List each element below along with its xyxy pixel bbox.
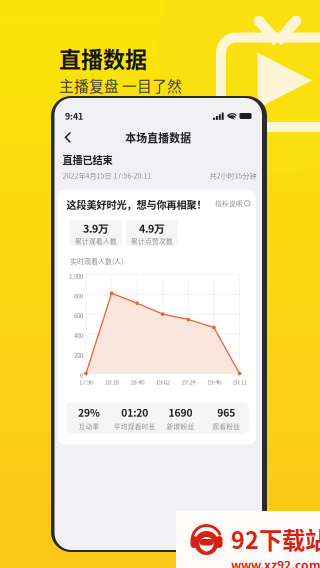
staticText: 400 [74,331,83,340]
staticText: 1690 [168,405,192,420]
staticText: 直播数据 [59,42,147,74]
staticText: 18:18 [105,377,119,386]
staticText: 17:56 [79,377,93,386]
staticText: 965 [217,405,235,420]
staticText: 200 [74,351,83,360]
staticText: 9:41 [65,110,83,122]
staticText: 1,000 [69,271,83,281]
button[interactable]: Back [59,126,76,148]
staticText: www.xz92.com [231,556,320,568]
staticText: 0 [80,370,83,380]
staticText: 01:20 [121,405,148,420]
staticText: 累计点赞次数 [131,236,173,246]
staticText: 指标说明 [215,198,243,208]
staticText: 29% [78,405,100,420]
staticText: 这段美好时光，想与你再相聚！ [66,197,206,212]
staticText: 2022年4月15日 17:56-20:11 [62,170,151,181]
staticText: 主播复盘 一目了然 [59,75,182,96]
staticText: 800 [74,291,83,300]
staticText: 4.9万 [139,220,165,236]
staticText: 互动率 [78,422,99,431]
staticText: 新增粉丝 [166,422,194,431]
staticText: 92下载站 [231,522,320,556]
staticText: 累计观看人数 [75,236,117,246]
staticText: 实时观看人数(人) [70,256,123,266]
staticText: 本场直播数据 [125,130,191,145]
staticText: 20:11 [232,377,246,386]
staticText: 观看粉丝 [212,422,240,431]
staticText: 18:40 [130,377,144,386]
staticText: 600 [74,311,83,320]
staticText: 直播已结束 [62,152,112,167]
staticText: 19:46 [207,377,221,386]
staticText: 共2小时15分钟 [209,170,256,181]
staticText: 19:24 [181,377,195,386]
staticText: 3.9万 [83,220,109,236]
staticText: 平均观看时长 [114,422,156,431]
button[interactable]: 指标说明 [215,198,250,208]
staticText: 19:02 [156,377,170,386]
